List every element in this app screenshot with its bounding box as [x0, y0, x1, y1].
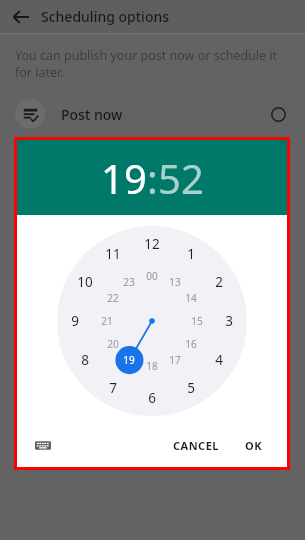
button[interactable]: 20 — [101, 332, 125, 356]
button[interactable]: 8 — [73, 348, 97, 372]
staticText: 18 — [146, 359, 158, 373]
staticText: 2 — [215, 273, 223, 291]
button[interactable]: 21 — [95, 309, 119, 333]
button[interactable]: 19 — [101, 151, 147, 205]
button[interactable]: Back — [9, 5, 33, 29]
staticText: : — [147, 151, 158, 205]
button[interactable]: 23 — [117, 270, 141, 294]
button[interactable]: 3 — [217, 309, 241, 333]
button[interactable]: 52 — [158, 151, 204, 205]
staticText: CANCEL — [173, 438, 219, 453]
button[interactable]: 5 — [179, 376, 203, 400]
staticText: 5 — [187, 379, 195, 397]
button[interactable]: 1 — [179, 242, 203, 266]
button[interactable]: 2 — [207, 270, 231, 294]
button[interactable]: 00 — [140, 264, 164, 288]
staticText: 12 — [144, 235, 160, 253]
staticText: 7 — [109, 379, 117, 397]
button[interactable]: Switch to text input — [29, 431, 57, 459]
staticText: Scheduling options — [41, 7, 170, 26]
button[interactable]: Select Post now — [266, 102, 290, 126]
staticText: 9 — [71, 312, 79, 330]
button[interactable]: 12 — [140, 232, 164, 256]
staticText: 13 — [169, 275, 181, 289]
staticText: 23 — [123, 275, 135, 289]
staticText: 22 — [107, 291, 119, 305]
button[interactable]: 15 — [185, 309, 209, 333]
button[interactable]: 4 — [207, 348, 231, 372]
button[interactable]: CANCEL — [165, 432, 227, 459]
staticText: 6 — [148, 389, 156, 407]
button[interactable]: OK — [237, 432, 271, 459]
staticText: 16 — [185, 337, 197, 351]
button[interactable]: 14 — [179, 286, 203, 310]
staticText: 20 — [107, 337, 119, 351]
button[interactable]: 16 — [179, 332, 203, 356]
button[interactable]: 18 — [140, 354, 164, 378]
button[interactable]: 11 — [101, 242, 125, 266]
staticText: 00 — [146, 269, 158, 283]
staticText: 11 — [105, 245, 121, 263]
button[interactable]: 13 — [163, 270, 187, 294]
button[interactable]: 9 — [63, 309, 87, 333]
staticText: 4 — [215, 351, 223, 369]
staticText: 21 — [101, 314, 113, 328]
staticText: Post now — [61, 105, 123, 124]
staticText: 15 — [191, 314, 203, 328]
staticText: 8 — [81, 351, 89, 369]
staticText: 3 — [225, 312, 233, 330]
staticText: 14 — [185, 291, 197, 305]
button[interactable]: 17 — [163, 348, 187, 372]
button[interactable]: 7 — [101, 376, 125, 400]
button[interactable]: 10 — [73, 270, 97, 294]
staticText: OK — [245, 438, 263, 453]
button[interactable]: Post now — [0, 92, 305, 136]
staticText: 17 — [169, 353, 181, 367]
staticText: 10 — [77, 273, 93, 291]
staticText: You can publish your post now or schedul… — [15, 47, 290, 81]
button[interactable]: 22 — [101, 286, 125, 310]
staticText: 19 — [123, 353, 135, 367]
button[interactable]: 6 — [140, 386, 164, 410]
staticText: 1 — [187, 245, 195, 263]
button[interactable]: 19 — [117, 348, 141, 372]
